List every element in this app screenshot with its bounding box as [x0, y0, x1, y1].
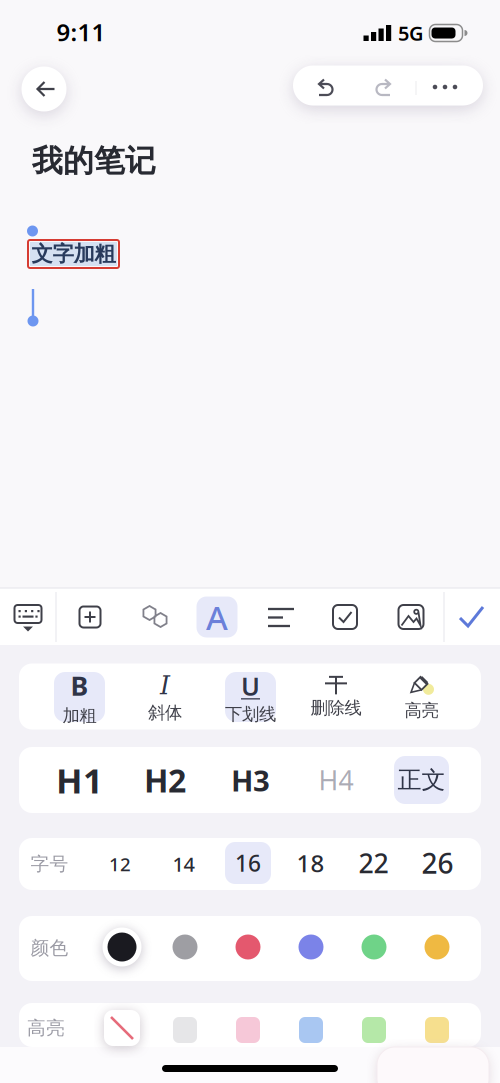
staticText: 14 [172, 851, 194, 877]
button[interactable]: Highlight colour [425, 1017, 449, 1043]
button[interactable]: Colour [424, 934, 449, 959]
staticText: H4 [318, 762, 353, 798]
staticText: 文字加粗 [31, 241, 115, 267]
button[interactable]: 14 [163, 842, 203, 886]
button[interactable]: Redo [362, 67, 406, 107]
button[interactable]: Alignment [259, 595, 303, 639]
button[interactable]: I [135, 671, 195, 723]
button[interactable]: Highlight colour [236, 1017, 260, 1043]
staticText: 加粗 [62, 705, 96, 726]
button[interactable]: Hide keyboard [6, 595, 50, 639]
button[interactable]: 12 [100, 842, 140, 886]
staticText: 高亮 [27, 1016, 65, 1039]
staticText: 9:11 [56, 16, 105, 48]
button[interactable]: 22 [351, 841, 395, 885]
button[interactable]: 正文 [394, 756, 449, 804]
button[interactable]: Colour [235, 934, 260, 959]
staticText: 斜体 [148, 702, 182, 723]
button[interactable]: No highlight [104, 1010, 140, 1046]
staticText: 删除线 [310, 697, 361, 719]
staticText: 下划线 [225, 704, 276, 725]
button[interactable]: 高亮 [391, 669, 451, 725]
button[interactable]: Checklist [323, 595, 367, 639]
button[interactable]: Undo [303, 67, 347, 107]
button[interactable]: B [54, 668, 105, 726]
button[interactable]: 26 [415, 841, 459, 885]
button[interactable]: Insert image [389, 595, 433, 639]
staticText: A [206, 595, 228, 639]
button[interactable]: Black [102, 927, 141, 966]
staticText: H2 [144, 759, 186, 801]
staticText: 字号 [30, 852, 68, 875]
staticText: 高亮 [404, 700, 438, 721]
button[interactable]: U [225, 669, 276, 725]
button[interactable]: Highlight colour [299, 1017, 323, 1043]
staticText: 我的笔记 [32, 142, 156, 180]
button[interactable]: 16 [225, 842, 271, 884]
button[interactable]: Highlight colour [173, 1017, 197, 1043]
button[interactable]: Insert [68, 595, 112, 639]
button[interactable]: Done [449, 595, 493, 639]
button[interactable]: H1 [46, 754, 112, 806]
button[interactable]: Back [21, 66, 66, 111]
button[interactable]: Shapes [133, 595, 177, 639]
button[interactable]: Text style [196, 595, 237, 639]
staticText: 颜色 [30, 936, 68, 959]
staticText: 16 [235, 848, 261, 878]
button[interactable]: H2 [132, 754, 198, 806]
staticText: 26 [421, 844, 453, 882]
staticText: U [241, 669, 260, 703]
staticText: 18 [296, 847, 324, 879]
button[interactable]: 18 [290, 841, 330, 885]
staticText: 22 [358, 845, 388, 881]
staticText: 5G [398, 20, 424, 46]
button[interactable]: Colour [361, 934, 386, 959]
button[interactable]: More [423, 67, 467, 107]
button[interactable]: H4 [303, 754, 369, 806]
staticText: I [160, 671, 170, 700]
staticText: H1 [56, 757, 103, 803]
staticText: 12 [109, 852, 131, 876]
button[interactable]: Colour [298, 934, 323, 959]
button[interactable]: Colour [172, 934, 197, 959]
button[interactable]: H3 [217, 754, 283, 806]
button[interactable]: 删除线 [304, 671, 368, 723]
staticText: H3 [231, 760, 270, 799]
staticText: B [70, 668, 88, 703]
button[interactable]: Highlight colour [362, 1017, 386, 1043]
staticText: 正文 [397, 765, 445, 795]
